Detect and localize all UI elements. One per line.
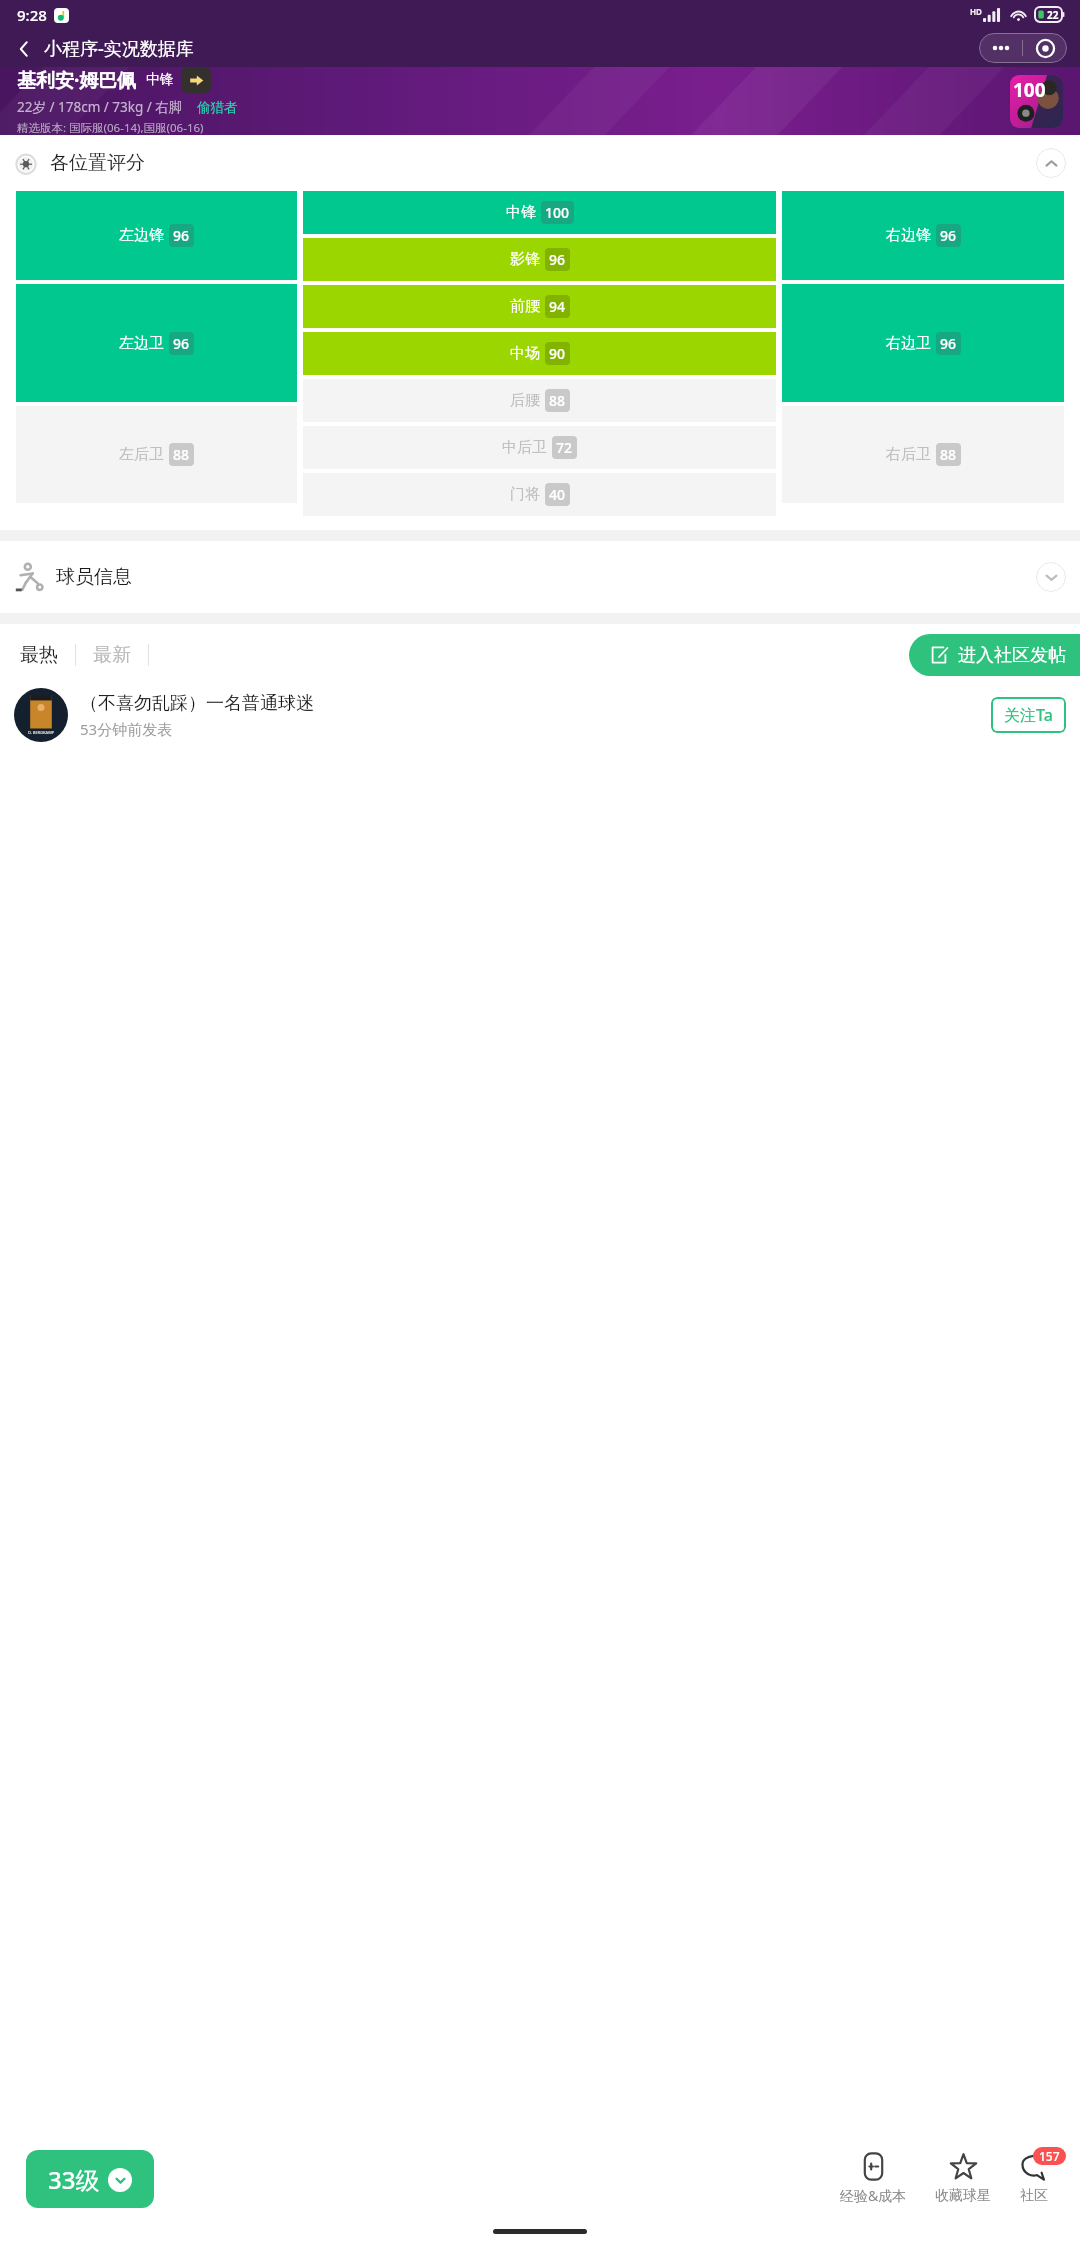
staticText: 40 xyxy=(549,485,566,504)
staticText: 小程序-实况数据库 xyxy=(44,36,194,61)
button[interactable]: 球员信息 xyxy=(0,541,1080,613)
button[interactable]: 社区 xyxy=(1013,2149,1054,2209)
staticText: 9:28 xyxy=(17,5,47,25)
button[interactable]: 中后卫 xyxy=(303,426,776,469)
staticText: 96 xyxy=(549,250,566,269)
button[interactable]: 左边锋 xyxy=(16,191,297,280)
staticText: 精选版本: 国际服(06-14),国服(06-16) xyxy=(17,120,204,135)
staticText: 球员信息 xyxy=(56,565,132,589)
staticText: HD xyxy=(970,6,982,17)
button[interactable]: 最新 xyxy=(87,637,137,673)
staticText: 90 xyxy=(549,344,566,363)
staticText: 96 xyxy=(940,226,957,245)
staticText: 影锋 xyxy=(510,250,540,269)
staticText: 96 xyxy=(173,226,190,245)
button[interactable]: Back xyxy=(6,32,202,65)
staticText: 88 xyxy=(549,391,566,410)
button[interactable]: 最热 xyxy=(14,637,64,673)
button[interactable]: 左边卫 xyxy=(16,284,297,402)
button[interactable]: 影锋 xyxy=(303,238,776,281)
staticText: （不喜勿乱踩）一名普通球迷 xyxy=(80,692,314,715)
button[interactable]: Player card xyxy=(1010,75,1063,128)
button[interactable]: 经验&成本 xyxy=(834,2148,913,2209)
button[interactable]: 前腰 xyxy=(303,285,776,328)
staticText: 88 xyxy=(173,445,190,464)
staticText: 100 xyxy=(1013,77,1046,103)
staticText: 右后卫 xyxy=(886,445,931,464)
button[interactable]: Expand xyxy=(1036,562,1066,592)
button[interactable]: 进入社区发帖 xyxy=(909,634,1080,676)
staticText: 96 xyxy=(173,334,190,353)
staticText: 96 xyxy=(940,334,957,353)
staticText: 社区 xyxy=(1020,2187,1048,2205)
button[interactable]: Collapse xyxy=(1036,148,1066,178)
button[interactable]: 右边卫 xyxy=(782,284,1064,402)
button[interactable]: D. BERGKAMP xyxy=(0,686,1080,752)
staticText: 中后卫 xyxy=(502,438,547,457)
staticText: 左边锋 xyxy=(119,226,164,245)
button[interactable]: 后腰 xyxy=(303,379,776,422)
staticText: 进入社区发帖 xyxy=(958,644,1066,667)
button[interactable]: Change position xyxy=(181,67,211,93)
staticText: 经验&成本 xyxy=(840,2186,907,2205)
staticText: 右边锋 xyxy=(886,226,931,245)
staticText: 22岁 / 178cm / 73kg / 右脚 xyxy=(17,98,183,116)
staticText: 左后卫 xyxy=(119,445,164,464)
staticText: 右边卫 xyxy=(886,334,931,353)
staticText: 门将 xyxy=(510,485,540,504)
button[interactable]: 右边锋 xyxy=(782,191,1064,280)
staticText: 偷猎者 xyxy=(197,99,238,116)
staticText: 各位置评分 xyxy=(50,151,145,175)
button[interactable]: 33级 xyxy=(26,2150,154,2208)
staticText: 中场 xyxy=(510,344,540,363)
button[interactable]: 门将 xyxy=(303,473,776,516)
staticText: 收藏球星 xyxy=(935,2187,991,2205)
button[interactable]: 关注Ta xyxy=(991,697,1066,733)
staticText: 后腰 xyxy=(510,391,540,410)
staticText: 100 xyxy=(545,203,570,222)
staticText: 最新 xyxy=(93,643,131,667)
staticText: 53分钟前发表 xyxy=(80,719,173,739)
button[interactable]: 中锋 xyxy=(303,191,776,234)
button[interactable]: 收藏球星 xyxy=(929,2149,997,2209)
staticText: 中锋 xyxy=(146,71,174,89)
staticText: 中锋 xyxy=(506,203,536,222)
staticText: 左边卫 xyxy=(119,334,164,353)
staticText: 88 xyxy=(940,445,957,464)
staticText: 基利安·姆巴佩 xyxy=(17,67,137,93)
staticText: 94 xyxy=(549,297,566,316)
staticText: 关注Ta xyxy=(1004,704,1053,726)
staticText: 33级 xyxy=(48,2163,100,2196)
button[interactable]: 右后卫 xyxy=(782,406,1064,503)
other: Back xyxy=(14,39,34,59)
button[interactable]: 左后卫 xyxy=(16,406,297,503)
button[interactable]: More options xyxy=(979,33,1022,63)
button[interactable]: 各位置评分 xyxy=(0,135,1080,191)
staticText: 最热 xyxy=(20,643,58,667)
staticText: 前腰 xyxy=(510,297,540,316)
button[interactable]: Close xyxy=(1023,33,1067,63)
staticText: 157 xyxy=(1039,2148,1060,2164)
staticText: 22 xyxy=(1047,8,1059,22)
staticText: 72 xyxy=(556,438,573,457)
button[interactable]: 中场 xyxy=(303,332,776,375)
staticText: D. BERGKAMP xyxy=(28,730,55,735)
